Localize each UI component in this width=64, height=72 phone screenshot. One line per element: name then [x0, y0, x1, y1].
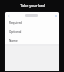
staticText: Take your bed: [20, 3, 45, 8]
button[interactable]: [25, 14, 38, 17]
staticText: Required: [9, 21, 22, 25]
staticText: Name: [9, 39, 18, 43]
button[interactable]: Required: [7, 20, 57, 25]
button[interactable]: Name: [7, 38, 57, 43]
staticText: Optional: [9, 30, 22, 34]
button[interactable]: Back: [6, 13, 11, 18]
button[interactable]: Add: [53, 13, 58, 18]
button[interactable]: Optional: [7, 29, 57, 34]
